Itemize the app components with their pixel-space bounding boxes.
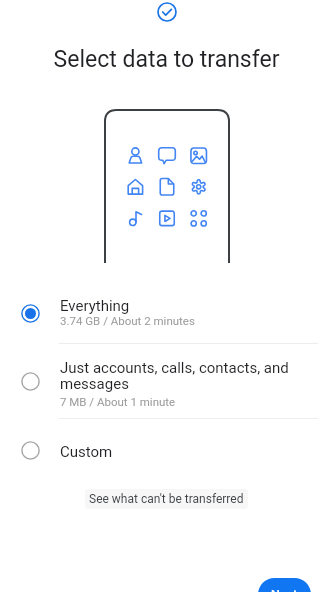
staticText: Just accounts, calls, contacts, and mess… — [60, 359, 293, 393]
staticText: Custom — [60, 443, 293, 461]
button[interactable]: Just accounts, calls, contacts, and mess… — [0, 354, 333, 418]
staticText: Next — [271, 587, 298, 592]
button[interactable]: Custom — [0, 430, 333, 471]
staticText: Select data to transfer — [0, 46, 333, 73]
button[interactable]: See what can't be transferred — [85, 489, 248, 509]
staticText: 7 MB / About 1 minute — [60, 395, 176, 408]
button[interactable]: Next — [258, 578, 311, 592]
staticText: See what can't be transferred — [89, 492, 244, 506]
staticText: Everything — [60, 297, 293, 315]
button[interactable]: Everything — [0, 289, 333, 343]
staticText: 3.74 GB / About 2 minutes — [60, 314, 195, 327]
button[interactable]: Checked — [157, 2, 177, 22]
